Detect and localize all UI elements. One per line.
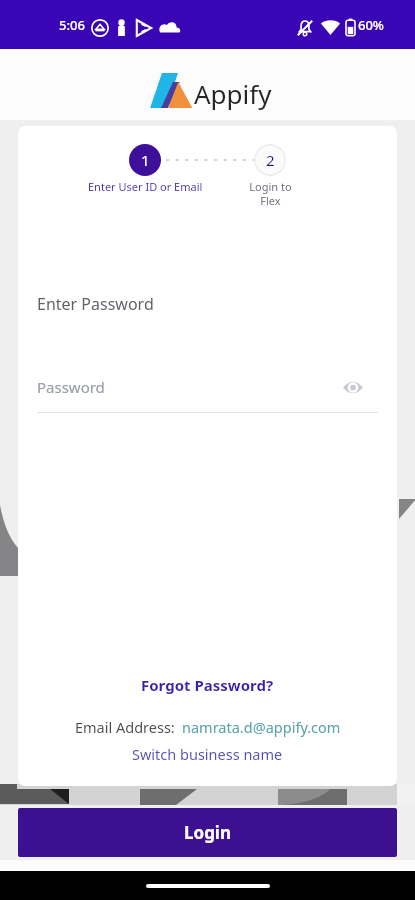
staticText: Forgot Password? [141,675,274,695]
staticText: 5:06 [59,16,85,34]
staticText: 60% [358,16,384,34]
button[interactable]: namrata.d@appify.com [182,717,341,737]
staticText: Appify [194,76,272,111]
staticText: 1 [141,150,150,170]
staticText: Email Address: [75,717,175,737]
staticText: Login to Flex [249,179,292,208]
staticText: Enter User ID or Email [88,179,203,194]
staticText: Password [37,377,105,397]
button[interactable]: Forgot Password? [135,673,280,697]
staticText: Enter Password [37,293,154,315]
button[interactable]: Show password [339,373,367,401]
button[interactable]: Login [18,808,397,857]
button[interactable]: Switch business name [126,742,289,766]
staticText: Login [184,821,232,844]
staticText: Switch business name [132,744,283,764]
staticText: 2 [266,150,275,170]
